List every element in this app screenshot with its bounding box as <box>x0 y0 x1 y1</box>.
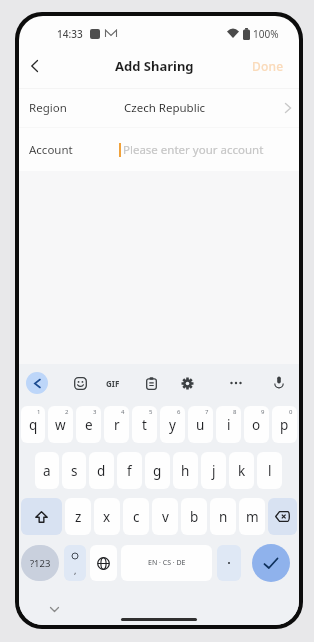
staticText: t <box>142 416 147 434</box>
staticText: y <box>169 416 176 434</box>
button[interactable]: q <box>21 406 45 443</box>
button[interactable]: w <box>48 406 73 443</box>
button[interactable]: f <box>117 452 142 489</box>
button[interactable]: z <box>65 498 91 535</box>
button[interactable]: n <box>210 498 236 535</box>
staticText: g <box>153 462 162 480</box>
button[interactable]: GIF <box>101 371 125 395</box>
staticText: u <box>196 416 205 434</box>
button[interactable]: j <box>201 452 226 489</box>
staticText: o <box>252 416 261 434</box>
staticText: p <box>280 416 289 434</box>
staticText: 6 <box>177 408 181 416</box>
staticText: w <box>55 416 66 434</box>
button[interactable]: b <box>181 498 207 535</box>
button[interactable] <box>268 498 297 535</box>
staticText: m <box>246 508 259 526</box>
button[interactable] <box>68 371 92 395</box>
staticText: Please enter your account <box>123 142 264 158</box>
staticText: Czech Republic <box>124 100 206 116</box>
staticText: EN · CS · DE <box>148 558 186 568</box>
button[interactable]: e <box>76 406 101 443</box>
button[interactable]: p <box>272 406 297 443</box>
staticText: 9 <box>261 408 265 416</box>
staticText: n <box>219 508 228 526</box>
button[interactable]: g <box>145 452 170 489</box>
staticText: 14:33 <box>57 27 83 41</box>
staticText: 1 <box>37 408 41 416</box>
button[interactable]: m <box>239 498 265 535</box>
button[interactable]: t <box>132 406 157 443</box>
staticText: k <box>238 462 246 480</box>
button[interactable]: y <box>160 406 185 443</box>
button[interactable]: o <box>244 406 269 443</box>
staticText: i <box>227 416 231 434</box>
button[interactable]: r <box>104 406 129 443</box>
staticText: r <box>114 416 120 434</box>
button[interactable]: v <box>152 498 178 535</box>
button[interactable] <box>267 371 291 395</box>
button[interactable]: Region <box>19 89 299 127</box>
button[interactable]: d <box>89 452 114 489</box>
button[interactable]: c <box>123 498 149 535</box>
staticText: ?123 <box>30 557 51 570</box>
staticText: Add Sharing <box>115 57 194 75</box>
staticText: 7 <box>205 408 209 416</box>
button[interactable] <box>217 545 241 581</box>
button[interactable]: h <box>173 452 198 489</box>
staticText: 0 <box>289 408 293 416</box>
button[interactable]: Done <box>252 58 284 74</box>
staticText: 100% <box>253 27 279 41</box>
button[interactable]: i <box>216 406 241 443</box>
staticText: 5 <box>149 408 153 416</box>
button[interactable]: l <box>257 452 282 489</box>
staticText: 8 <box>233 408 237 416</box>
button[interactable]: EN · CS · DE <box>121 545 212 581</box>
staticText: f <box>127 462 132 480</box>
staticText: Account <box>29 142 73 158</box>
staticText: j <box>212 462 216 480</box>
button[interactable] <box>224 371 248 395</box>
staticText: b <box>190 508 199 526</box>
staticText: , <box>74 564 77 576</box>
button[interactable] <box>175 371 199 395</box>
button[interactable] <box>139 371 163 395</box>
staticText: 2 <box>65 408 69 416</box>
button[interactable] <box>26 372 48 394</box>
staticText: Region <box>29 100 67 116</box>
button[interactable]: x <box>94 498 120 535</box>
button[interactable]: ?123 <box>21 545 59 581</box>
staticText: c <box>133 508 140 526</box>
button[interactable] <box>252 544 290 582</box>
button[interactable] <box>21 53 47 79</box>
staticText: e <box>85 416 93 434</box>
staticText: GIF <box>106 378 120 389</box>
button[interactable]: k <box>229 452 254 489</box>
staticText: z <box>75 508 82 526</box>
button[interactable]: a <box>35 452 59 489</box>
button[interactable]: u <box>188 406 213 443</box>
button[interactable]: s <box>62 452 86 489</box>
button[interactable] <box>90 545 117 581</box>
staticText: h <box>181 462 190 480</box>
button[interactable]: , <box>64 545 86 581</box>
button[interactable]: Account <box>19 128 299 171</box>
staticText: q <box>29 416 38 434</box>
staticText: 3 <box>93 408 97 416</box>
staticText: a <box>43 462 51 480</box>
staticText: Done <box>252 58 284 74</box>
staticText: 4 <box>121 408 125 416</box>
staticText: d <box>97 462 106 480</box>
button[interactable] <box>21 498 62 535</box>
staticText: s <box>71 462 78 480</box>
staticText: l <box>268 462 272 480</box>
staticText: x <box>103 508 111 526</box>
staticText: v <box>162 508 169 526</box>
